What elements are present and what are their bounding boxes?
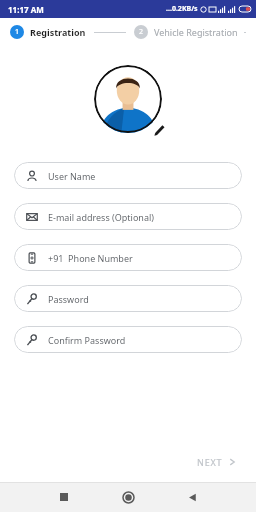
button[interactable]: Recents: [32, 482, 96, 512]
staticText: Confirm Password: [48, 334, 126, 346]
staticText: +91 Phone Number: [48, 252, 133, 264]
staticText: Vehicle Registration: [154, 26, 238, 38]
staticText: ...0.2KB/s: [166, 4, 198, 14]
staticText: Password: [48, 293, 89, 305]
button[interactable]: Back: [160, 482, 224, 512]
staticText: Registration: [30, 26, 86, 38]
button[interactable]: NEXT: [191, 450, 242, 474]
staticText: 11:17 AM: [8, 4, 44, 15]
staticText: 2: [139, 27, 144, 37]
button[interactable]: Edit photo: [153, 124, 165, 136]
button[interactable]: User Name: [14, 162, 242, 189]
button[interactable]: +91 Phone Number: [14, 244, 242, 271]
button[interactable]: 1: [10, 25, 86, 39]
button[interactable]: 2: [134, 25, 238, 39]
button[interactable]: Password: [14, 285, 242, 312]
button[interactable]: E-mail address (Optional): [14, 203, 242, 230]
button[interactable]: Profile photo: [94, 65, 162, 133]
staticText: User Name: [48, 170, 96, 182]
staticText: NEXT: [197, 456, 223, 468]
button[interactable]: Confirm Password: [14, 326, 242, 353]
staticText: E-mail address (Optional): [48, 211, 154, 223]
button[interactable]: Home: [96, 482, 160, 512]
staticText: 1: [15, 27, 20, 37]
